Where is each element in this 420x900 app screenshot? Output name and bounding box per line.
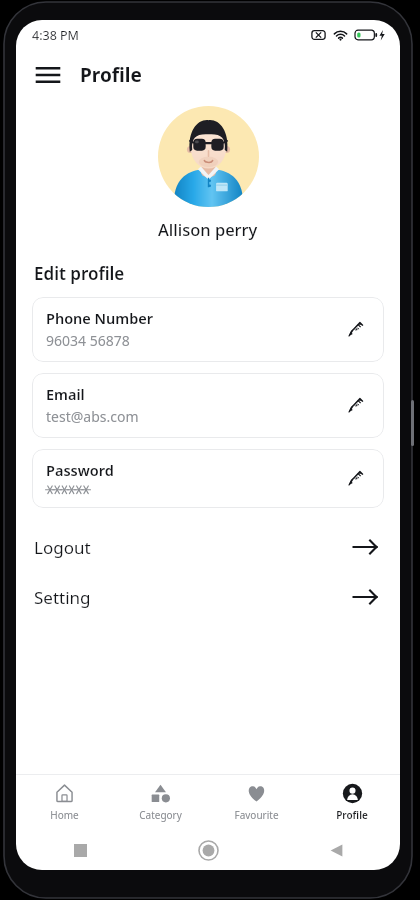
button[interactable]: Phone Number — [32, 297, 384, 362]
staticText: Favourite — [234, 808, 279, 822]
staticText: Home — [50, 808, 79, 822]
staticText: 4:38 PM — [32, 27, 79, 44]
button[interactable]: Profile photo — [158, 106, 259, 207]
staticText: Password — [46, 460, 114, 480]
button[interactable]: Setting — [16, 580, 400, 614]
staticText: Allison perry — [158, 218, 258, 240]
button[interactable]: Email — [32, 373, 384, 438]
staticText: 96034 56878 — [46, 331, 130, 350]
button[interactable]: Home — [144, 830, 272, 870]
staticText: Phone Number — [46, 308, 154, 328]
button[interactable]: Category — [112, 775, 208, 830]
button[interactable]: Back — [272, 830, 400, 870]
staticText: Logout — [34, 536, 352, 559]
button[interactable]: Password — [32, 449, 384, 508]
staticText: Setting — [34, 586, 352, 609]
button[interactable]: Recent apps — [16, 830, 144, 870]
button[interactable]: Home — [16, 775, 112, 830]
button[interactable]: Edit Phone Number — [338, 312, 372, 346]
button[interactable]: Edit Password — [338, 461, 372, 495]
staticText: Email — [46, 384, 85, 404]
button[interactable]: Profile — [304, 775, 400, 830]
button[interactable]: Open navigation menu — [30, 57, 66, 93]
button[interactable]: Edit Email — [338, 388, 372, 422]
staticText: test@abs.com — [46, 407, 139, 426]
staticText: Category — [139, 808, 182, 822]
button[interactable]: Favourite — [208, 775, 304, 830]
staticText: Profile — [336, 808, 368, 822]
staticText: Profile — [80, 62, 142, 88]
button[interactable]: Logout — [16, 530, 400, 564]
staticText: Edit profile — [34, 262, 125, 285]
